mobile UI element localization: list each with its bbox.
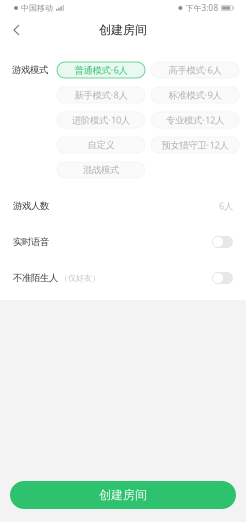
staticText: 高手模式·6人 — [168, 64, 221, 76]
staticText: 普通模式·6人 — [74, 64, 127, 76]
button[interactable]: Back — [3, 18, 31, 42]
button[interactable]: 预女猎守卫·12人 — [151, 137, 239, 153]
staticText: （仅好友） — [60, 273, 100, 283]
button[interactable]: 游戏人数 — [0, 188, 246, 224]
staticText: 预女猎守卫·12人 — [161, 139, 228, 151]
button[interactable]: 不准陌生人 — [0, 260, 246, 296]
staticText: 中国移动 — [21, 3, 53, 13]
button[interactable]: 自定义 — [57, 137, 145, 153]
staticText: 不准陌生人 — [13, 272, 58, 284]
staticText: 游戏人数 — [13, 200, 49, 212]
button[interactable]: 实时语音 — [0, 224, 246, 260]
staticText: 混战模式 — [83, 164, 119, 176]
staticText: 新手模式·8人 — [74, 89, 127, 101]
button[interactable]: 进阶模式·10人 — [57, 112, 145, 128]
button[interactable]: 创建房间 — [10, 481, 236, 509]
staticText: 创建房间 — [99, 23, 147, 37]
button[interactable]: 混战模式 — [57, 162, 145, 178]
button[interactable]: 专业模式·12人 — [151, 112, 239, 128]
button[interactable]: 普通模式·6人 — [57, 62, 145, 78]
staticText: 进阶模式·10人 — [72, 114, 130, 126]
staticText: 6人 — [219, 200, 233, 212]
staticText: 专业模式·12人 — [166, 114, 224, 126]
button[interactable]: 新手模式·8人 — [57, 87, 145, 103]
button[interactable]: 标准模式·9人 — [151, 87, 239, 103]
button[interactable]: 高手模式·6人 — [151, 62, 239, 78]
staticText: 游戏模式 — [12, 64, 48, 76]
staticText: 标准模式·9人 — [168, 89, 221, 101]
staticText: 自定义 — [87, 139, 114, 151]
staticText: 下午3:08 — [185, 3, 218, 13]
staticText: 实时语音 — [13, 236, 49, 248]
staticText: 创建房间 — [99, 488, 147, 502]
